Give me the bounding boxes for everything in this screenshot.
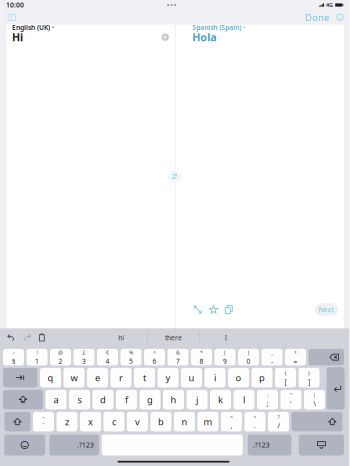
button[interactable]: Hide Keyboard <box>299 434 344 455</box>
button[interactable]: v <box>127 412 148 431</box>
staticText: Hi <box>12 30 23 44</box>
button[interactable]: space <box>102 434 243 455</box>
staticText: Done <box>305 11 329 23</box>
button[interactable]: Shift <box>291 412 342 431</box>
staticText: % <box>129 349 133 356</box>
button[interactable]: Copy <box>224 304 235 315</box>
staticText: 2 <box>58 357 62 366</box>
button[interactable]: _ <box>261 349 282 365</box>
staticText: 1 <box>35 357 39 366</box>
button[interactable]: & <box>167 349 188 365</box>
button[interactable]: English (UK) <box>12 25 55 30</box>
button[interactable]: ! <box>26 349 47 365</box>
button[interactable]: there <box>148 330 199 346</box>
button[interactable]: ~ <box>3 349 24 365</box>
button[interactable]: m <box>197 412 218 431</box>
button[interactable]: | <box>304 390 325 409</box>
button[interactable]: @ <box>50 349 71 365</box>
staticText: * <box>200 349 203 356</box>
button[interactable]: Done <box>302 10 332 24</box>
button[interactable]: Tab <box>3 368 37 387</box>
button[interactable]: Caps Lock <box>3 390 43 409</box>
button[interactable]: I <box>200 330 251 346</box>
staticText: - <box>271 357 273 366</box>
button[interactable]: { <box>275 368 296 387</box>
button[interactable]: g <box>139 390 160 409</box>
button[interactable]: s <box>69 390 90 409</box>
button[interactable]: < <box>221 412 242 431</box>
button[interactable]: Account <box>332 12 345 22</box>
staticText: I <box>225 333 227 342</box>
button[interactable]: i <box>204 368 225 387</box>
button[interactable]: ) <box>238 349 259 365</box>
button[interactable]: p <box>251 368 272 387</box>
staticText: ' <box>290 399 292 408</box>
staticText: hi <box>118 333 124 342</box>
button[interactable]: € <box>97 349 118 365</box>
button[interactable]: .?123 <box>248 434 291 455</box>
button[interactable]: Spanish (Spain) <box>192 25 246 30</box>
button[interactable]: ~ <box>33 412 54 431</box>
staticText: f <box>125 393 128 406</box>
button[interactable]: x <box>80 412 101 431</box>
staticText: } <box>308 369 310 376</box>
button[interactable]: k <box>210 390 231 409</box>
button[interactable]: w <box>63 368 84 387</box>
staticText: h <box>170 393 176 406</box>
button[interactable]: d <box>92 390 113 409</box>
button[interactable]: Paste <box>38 333 46 342</box>
staticText: 4G <box>326 1 333 9</box>
staticText: 6 <box>152 357 156 366</box>
staticText: m <box>203 415 212 428</box>
button[interactable]: r <box>110 368 131 387</box>
button[interactable]: Return <box>327 367 345 410</box>
button[interactable]: j <box>186 390 207 409</box>
staticText: ` <box>42 421 44 430</box>
button[interactable]: Delete <box>308 349 344 365</box>
button[interactable]: Full screen <box>192 304 203 315</box>
button[interactable]: ^ <box>144 349 165 365</box>
button[interactable]: q <box>40 368 61 387</box>
button[interactable]: Undo <box>7 334 16 341</box>
button[interactable]: a <box>45 390 66 409</box>
button[interactable]: .?123 <box>49 434 99 455</box>
button[interactable]: ( <box>214 349 235 365</box>
button[interactable]: y <box>157 368 178 387</box>
button[interactable]: > <box>244 412 265 431</box>
staticText: ( <box>224 349 226 356</box>
button[interactable]: Shift <box>4 412 30 431</box>
button[interactable]: : <box>257 390 278 409</box>
button[interactable]: * <box>191 349 212 365</box>
button[interactable]: + <box>285 349 306 365</box>
staticText: ) <box>247 349 249 356</box>
button[interactable]: Redo <box>23 334 31 341</box>
staticText: & <box>176 349 180 356</box>
button[interactable]: } <box>298 368 319 387</box>
button[interactable]: ? <box>268 412 289 431</box>
staticText: y <box>165 371 170 384</box>
button[interactable]: z <box>56 412 77 431</box>
button[interactable]: n <box>174 412 195 431</box>
staticText: v <box>135 415 140 428</box>
button[interactable]: Emoji <box>4 434 45 455</box>
button[interactable]: £ <box>73 349 94 365</box>
button[interactable]: " <box>280 390 301 409</box>
button[interactable]: u <box>181 368 202 387</box>
button[interactable]: Next <box>315 303 338 316</box>
button[interactable]: c <box>103 412 124 431</box>
button[interactable]: hi <box>95 330 147 346</box>
button[interactable]: t <box>134 368 155 387</box>
button[interactable]: o <box>228 368 249 387</box>
button[interactable]: f <box>116 390 137 409</box>
button[interactable]: b <box>150 412 171 431</box>
staticText: { <box>284 369 286 376</box>
button[interactable]: h <box>163 390 184 409</box>
button[interactable]: % <box>120 349 141 365</box>
button[interactable]: e <box>87 368 108 387</box>
staticText: 3 <box>82 357 86 366</box>
button[interactable]: Clear text <box>160 32 170 42</box>
button[interactable]: Show Sidebar <box>4 12 20 23</box>
button[interactable]: Favourite <box>208 304 219 315</box>
button[interactable]: l <box>233 390 254 409</box>
staticText: ~ <box>12 349 15 356</box>
